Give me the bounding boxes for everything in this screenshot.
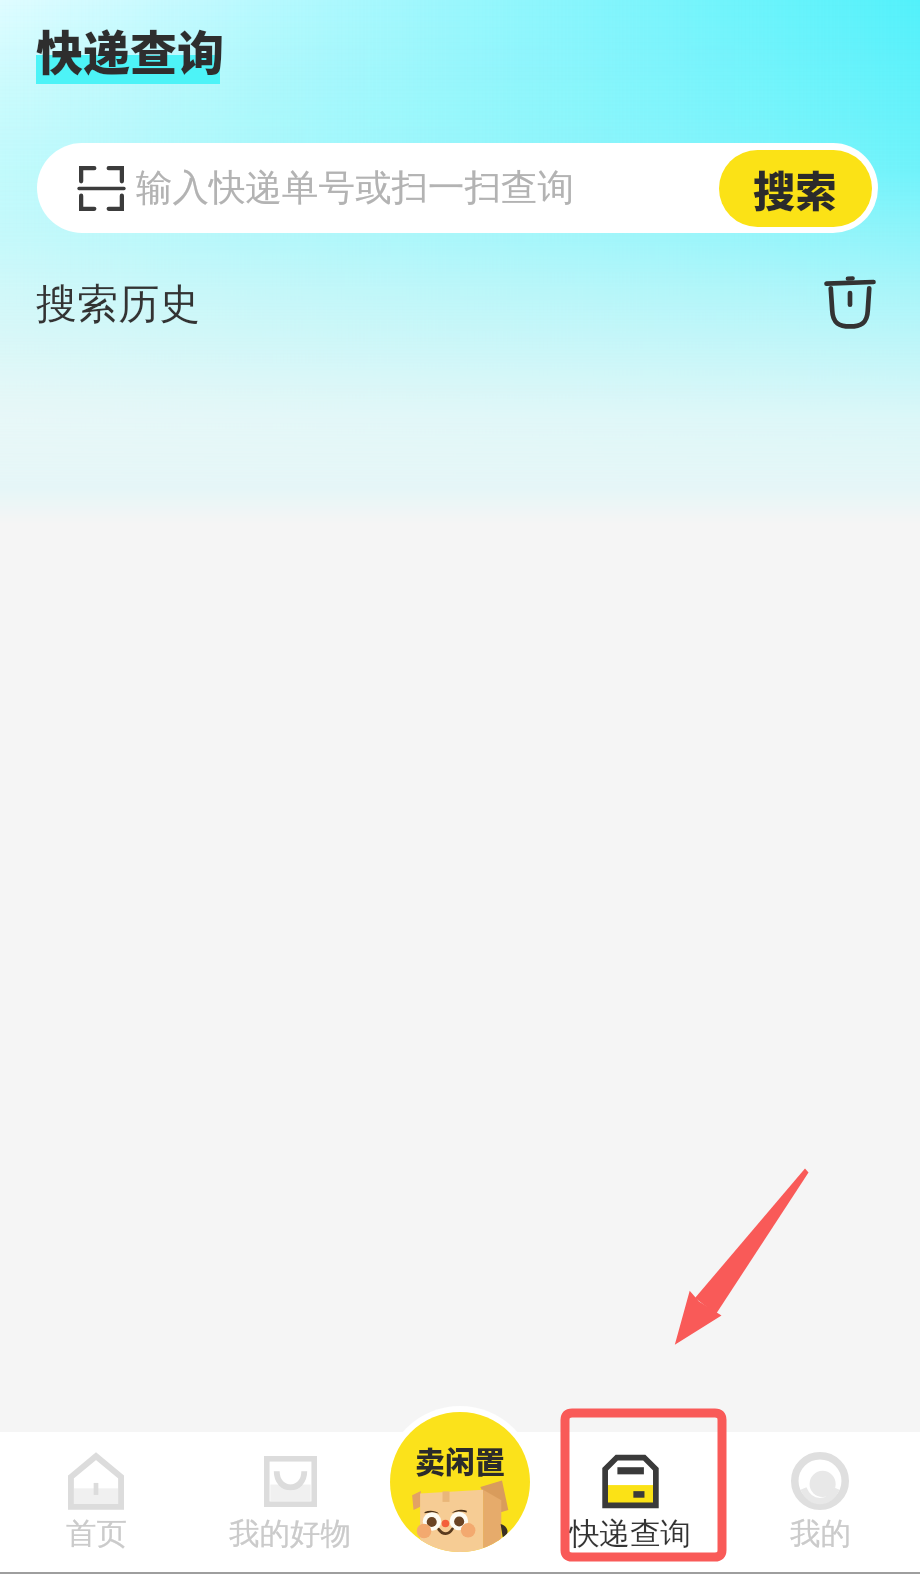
staticText: 我的	[790, 1515, 851, 1553]
button[interactable]: 快递查询	[545, 1452, 715, 1553]
button[interactable]: 搜索	[719, 150, 872, 227]
staticText: 搜索历史	[36, 279, 200, 331]
staticText: 搜索	[753, 158, 838, 219]
staticText: 我的好物	[229, 1515, 351, 1553]
button[interactable]: 我的	[735, 1452, 905, 1553]
staticText: 快递查询	[569, 1515, 691, 1553]
staticText: 卖闲置	[415, 1438, 505, 1481]
staticText: 输入快递单号或扫一扫查询	[136, 165, 574, 211]
button[interactable]: 首页	[11, 1452, 181, 1553]
button[interactable]: 清空搜索历史	[812, 262, 888, 338]
button[interactable]: 卖闲置	[384, 1406, 536, 1558]
button[interactable]: 扫一扫	[78, 165, 124, 211]
staticText: 首页	[66, 1515, 127, 1553]
staticText: 快递查询	[36, 15, 224, 77]
button[interactable]: 我的好物	[205, 1452, 375, 1553]
button[interactable]: 输入快递单号或扫一扫查询	[136, 143, 719, 233]
